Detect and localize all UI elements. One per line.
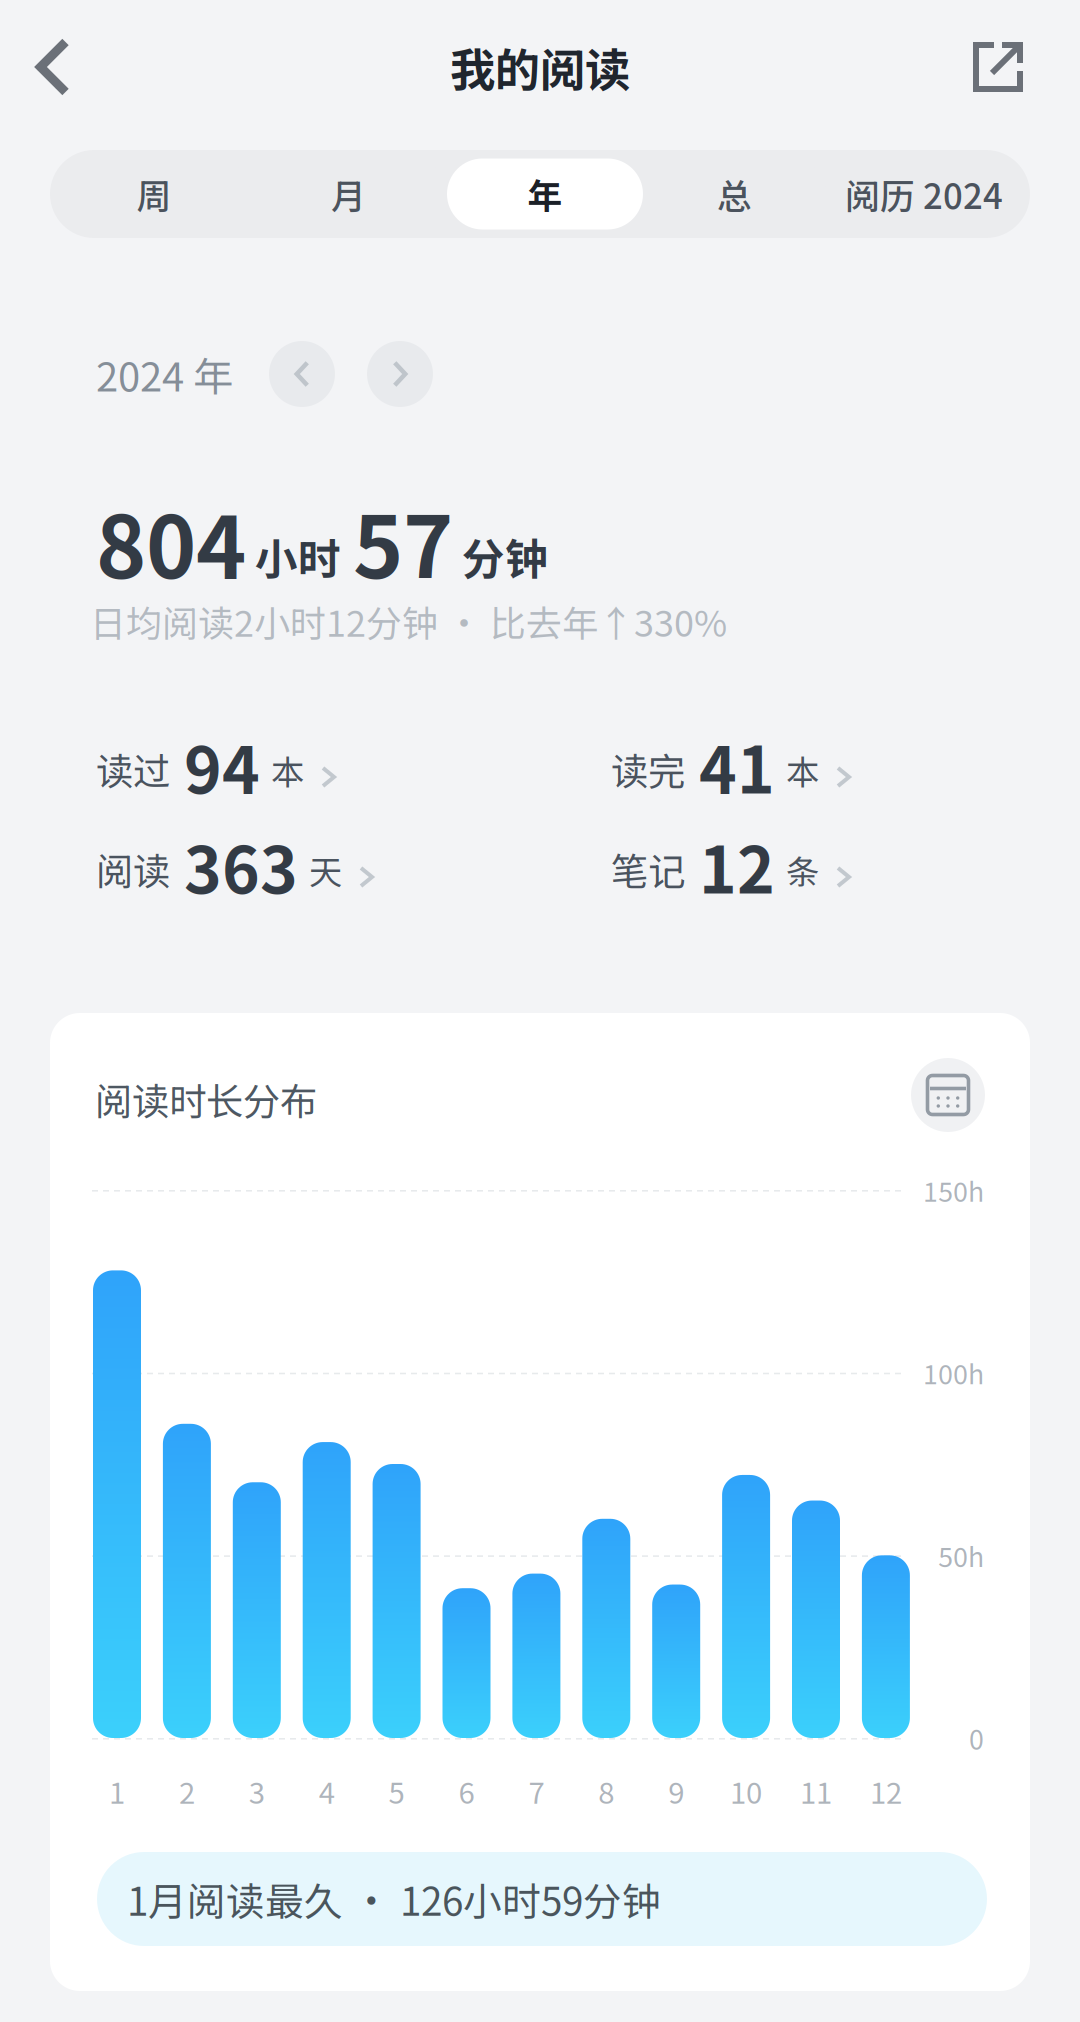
staticText: 我的阅读 <box>450 34 630 100</box>
button[interactable]: 周 <box>58 158 250 229</box>
staticText: 9 <box>668 1770 684 1812</box>
staticText: 条 <box>786 846 819 894</box>
button[interactable]: 总 <box>643 158 826 229</box>
staticText: 读过 <box>96 742 170 796</box>
staticText: 年 <box>527 169 562 219</box>
staticText: 5 <box>389 1770 405 1812</box>
button[interactable]: Calendar <box>911 1058 985 1132</box>
staticText: 阅读时长分布 <box>95 1072 317 1126</box>
staticText: 阅读 <box>96 842 170 896</box>
staticText: 150h <box>923 1171 984 1209</box>
staticText: 天 <box>309 846 342 894</box>
staticText: 6 <box>458 1770 474 1812</box>
staticText: 2 <box>179 1770 195 1812</box>
staticText: 0 <box>969 1719 984 1757</box>
staticText: 100h <box>923 1353 984 1392</box>
button[interactable]: 阅历 2024 <box>826 158 1022 229</box>
staticText: 41 <box>699 719 775 812</box>
staticText: 日均阅读2小时12分钟 · 比去年↑330% <box>90 595 727 647</box>
staticText: 阅历 2024 <box>845 169 1003 219</box>
button[interactable]: 月 <box>250 158 447 229</box>
button[interactable]: 年 <box>447 158 643 229</box>
staticText: 1月阅读最久 · 126小时59分钟 <box>127 1871 661 1927</box>
staticText: 读完 <box>611 742 685 796</box>
button[interactable]: 读完 <box>611 740 851 812</box>
staticText: 94 <box>184 719 260 812</box>
staticText: 笔记 <box>611 842 685 896</box>
staticText: 本 <box>271 746 304 794</box>
staticText: 本 <box>786 746 819 794</box>
button[interactable]: Share <box>950 12 1046 122</box>
staticText: 总 <box>717 169 752 219</box>
staticText: 12 <box>870 1770 902 1812</box>
staticText: 4 <box>319 1770 335 1812</box>
staticText: 12 <box>699 819 775 912</box>
button[interactable]: 笔记 <box>611 840 851 912</box>
staticText: 2024 年 <box>96 345 233 403</box>
staticText: 月 <box>331 169 366 219</box>
button[interactable]: Next year <box>367 341 433 407</box>
staticText: 50h <box>938 1536 984 1575</box>
staticText: 分钟 <box>462 525 548 587</box>
button[interactable]: Previous year <box>269 341 335 407</box>
staticText: 周 <box>136 169 171 219</box>
staticText: 7 <box>528 1770 544 1812</box>
staticText: 363 <box>184 819 298 912</box>
button[interactable]: Back <box>5 12 101 122</box>
staticText: 804 <box>96 479 246 603</box>
staticText: 小时 <box>255 525 341 587</box>
button[interactable]: 读过 <box>96 740 336 812</box>
button[interactable]: 阅读 <box>96 840 374 912</box>
staticText: 57 <box>353 479 453 603</box>
staticText: 11 <box>800 1770 832 1812</box>
staticText: 8 <box>598 1770 614 1812</box>
staticText: 1 <box>109 1770 125 1812</box>
staticText: 3 <box>249 1770 265 1812</box>
staticText: 10 <box>730 1770 762 1812</box>
